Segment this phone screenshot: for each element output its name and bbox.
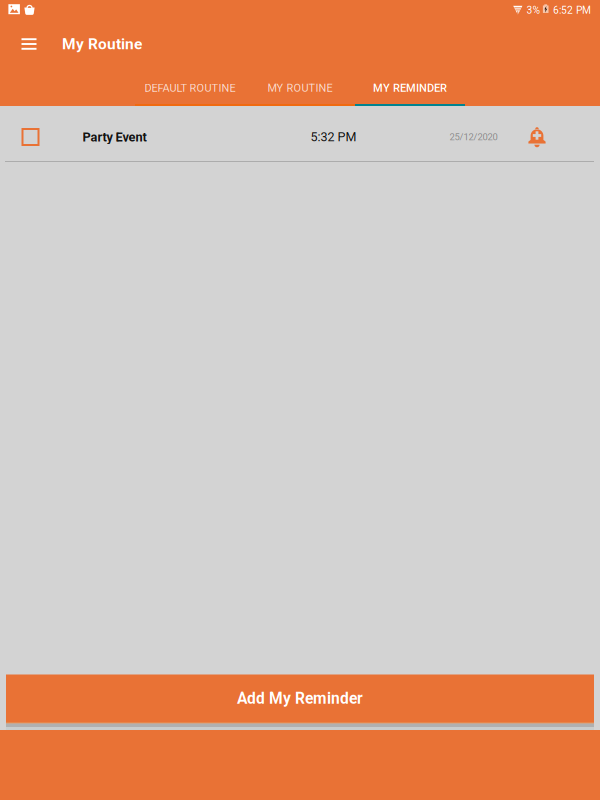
button[interactable]: MY ROUTINE — [245, 66, 355, 106]
staticText: 25/12/2020 — [449, 131, 497, 143]
button[interactable]: Add My Reminder — [6, 674, 594, 723]
button[interactable]: Party Event — [82, 114, 518, 160]
button[interactable]: Add reminder — [518, 114, 555, 160]
staticText: My Routine — [62, 35, 142, 53]
staticText: MY ROUTINE — [267, 82, 332, 94]
button[interactable]: Menu — [11, 24, 47, 64]
staticText: 5:32 PM — [310, 130, 356, 144]
staticText: Add My Reminder — [237, 689, 363, 708]
staticText: MY REMINDER — [373, 81, 447, 94]
staticText: Party Event — [82, 129, 146, 144]
button[interactable]: DEFAULT ROUTINE — [135, 66, 245, 106]
button[interactable]: Select Party Event — [0, 114, 61, 160]
staticText: 6:52 PM — [553, 4, 591, 16]
button[interactable]: MY REMINDER — [355, 66, 465, 106]
staticText: DEFAULT ROUTINE — [144, 82, 235, 94]
staticText: 3% — [526, 4, 540, 16]
